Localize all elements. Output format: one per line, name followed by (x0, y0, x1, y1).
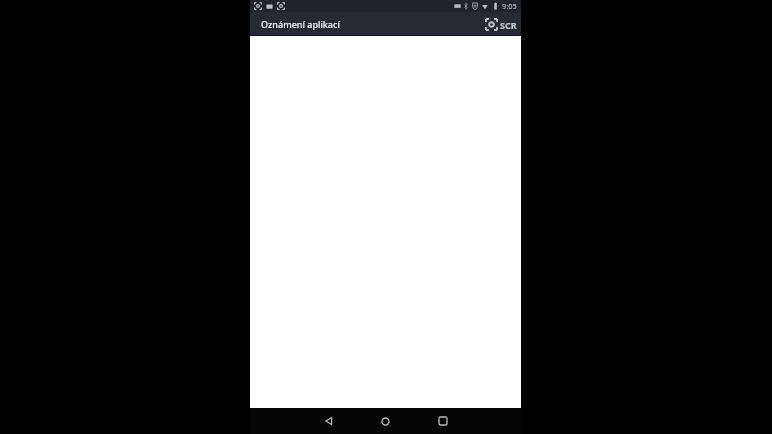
button[interactable]: SCR screen recorder (485, 18, 517, 31)
staticText: 9:05 (502, 1, 517, 11)
staticText: Oznámení aplikací (261, 18, 340, 30)
staticText: SCR (500, 19, 517, 31)
button[interactable]: Home (357, 408, 414, 434)
button[interactable]: Back (300, 408, 357, 434)
button[interactable]: Recent apps (414, 408, 471, 434)
